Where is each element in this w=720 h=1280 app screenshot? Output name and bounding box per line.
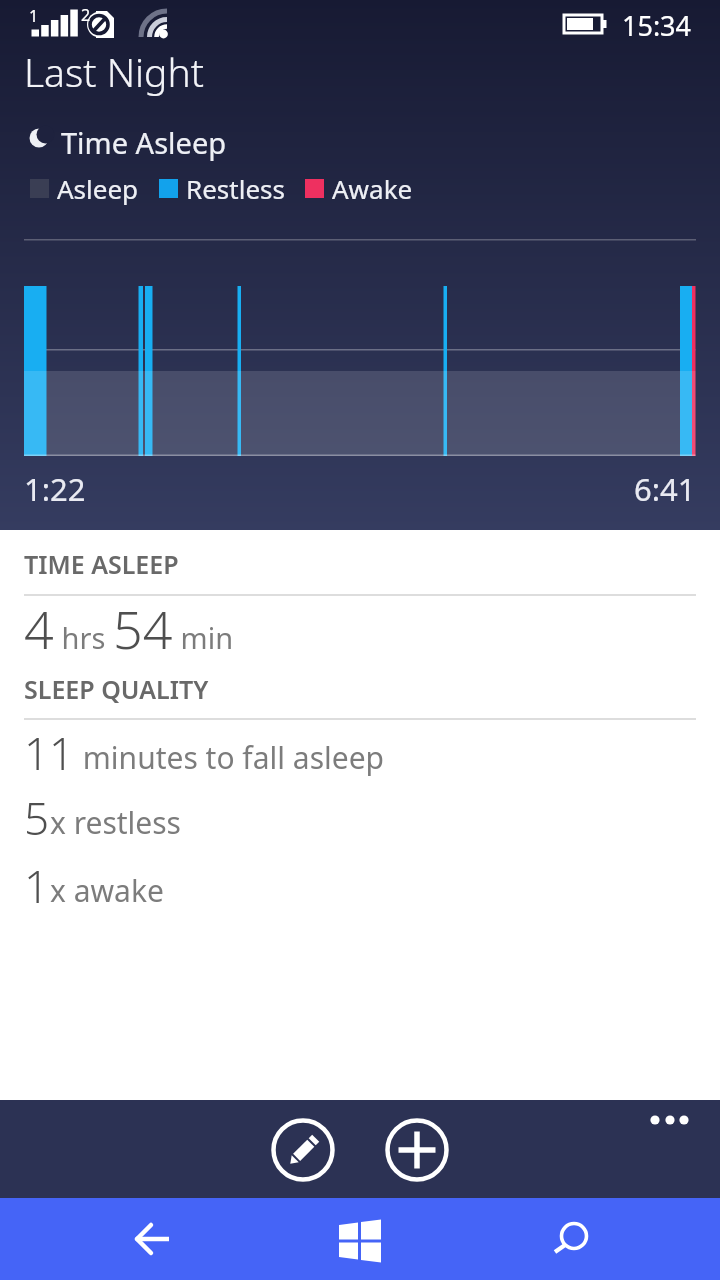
staticText: 6:41 [634,468,696,510]
button[interactable] [271,1118,335,1182]
button[interactable] [534,1199,614,1279]
staticText: 11 [24,723,75,783]
staticText: Asleep [57,171,139,206]
staticText: 54 [113,593,173,664]
button[interactable] [112,1199,192,1279]
staticText: hrs [54,618,113,657]
staticText: 1:22 [24,468,86,510]
staticText: TIME ASLEEP [24,547,179,581]
staticText: 2 [81,4,91,26]
button[interactable] [640,1100,700,1140]
staticText: Awake [332,171,413,206]
staticText: 4 [24,593,54,664]
staticText: 1 [29,5,39,27]
button[interactable] [385,1118,449,1182]
staticText: 1 [24,856,50,916]
staticText: minutes to fall asleep [75,737,385,778]
staticText: min [173,618,234,657]
staticText: x awake [50,870,164,911]
staticText: Time Asleep [61,123,227,162]
staticText: SLEEP QUALITY [24,672,209,706]
staticText: x restless [50,802,181,843]
staticText: Last Night [24,45,204,98]
button[interactable] [320,1199,400,1279]
staticText: Restless [186,171,285,206]
staticText: 15:34 [622,7,692,44]
staticText: 5 [24,788,50,848]
